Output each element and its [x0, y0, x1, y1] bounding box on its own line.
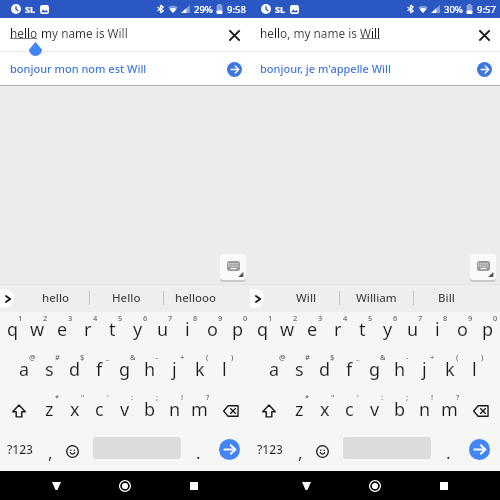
- button[interactable]: ": [62, 391, 87, 431]
- button[interactable]: Home: [112, 471, 138, 500]
- button[interactable]: @: [12, 351, 37, 391]
- staticText: q: [257, 317, 269, 342]
- button[interactable]: Backspace: [462, 391, 500, 431]
- button[interactable]: 5: [100, 312, 125, 351]
- button[interactable]: 8: [425, 312, 450, 351]
- button[interactable]: hellooo: [164, 284, 228, 312]
- button[interactable]: 7: [150, 312, 175, 351]
- button[interactable]: Clear text: [223, 24, 245, 46]
- button[interactable]: !: [412, 391, 437, 431]
- button[interactable]: Back: [0, 471, 112, 500]
- button[interactable]: 1: [0, 312, 25, 351]
- button[interactable]: 4: [75, 312, 100, 351]
- button[interactable]: 0: [225, 312, 250, 351]
- button[interactable]: Enter: [208, 431, 250, 471]
- button[interactable]: 5: [350, 312, 375, 351]
- button[interactable]: !: [162, 391, 187, 431]
- staticText: SL: [25, 3, 35, 15]
- staticText: Hello: [112, 290, 141, 306]
- button[interactable]: 6: [375, 312, 400, 351]
- button[interactable]: 2: [25, 312, 50, 351]
- button[interactable]: Home: [362, 471, 388, 500]
- button[interactable]: hello: [23, 284, 89, 312]
- button[interactable]: 4: [325, 312, 350, 351]
- button[interactable]: William: [340, 284, 413, 312]
- button[interactable]: Enter: [458, 431, 500, 471]
- button[interactable]: Recents: [138, 471, 250, 500]
- staticText: bonjour, je m'appelle Will: [260, 61, 392, 76]
- button[interactable]: Will: [273, 284, 339, 312]
- button[interactable]: 6: [125, 312, 150, 351]
- button[interactable]: $: [62, 351, 87, 391]
- button[interactable]: Emoji: [60, 431, 85, 471]
- button[interactable]: Backspace: [212, 391, 250, 431]
- button[interactable]: _: [87, 351, 112, 391]
- button[interactable]: (: [187, 351, 212, 391]
- button[interactable]: +: [162, 351, 187, 391]
- button[interactable]: ): [212, 351, 237, 391]
- button[interactable]: Shift: [250, 391, 287, 431]
- button[interactable]: Clear text: [473, 24, 495, 46]
- button[interactable]: #: [37, 351, 62, 391]
- button[interactable]: ?: [437, 391, 462, 431]
- button[interactable]: Shift: [0, 391, 37, 431]
- button[interactable]: ,: [290, 431, 310, 471]
- staticText: p: [232, 317, 244, 342]
- button[interactable]: ': [337, 391, 362, 431]
- button[interactable]: $: [312, 351, 337, 391]
- button[interactable]: ,: [40, 431, 60, 471]
- button[interactable]: ): [462, 351, 487, 391]
- button[interactable]: Insert translation: [223, 58, 245, 80]
- button[interactable]: ": [312, 391, 337, 431]
- staticText: 4: [93, 313, 98, 323]
- button[interactable]: -: [387, 351, 412, 391]
- staticText: :: [131, 392, 134, 402]
- button[interactable]: Bill: [414, 284, 478, 312]
- button[interactable]: :: [362, 391, 387, 431]
- button[interactable]: ?: [187, 391, 212, 431]
- button[interactable]: 1: [250, 312, 275, 351]
- button[interactable]: 9: [200, 312, 225, 351]
- button[interactable]: .: [439, 431, 458, 471]
- staticText: a: [19, 357, 30, 382]
- button[interactable]: Resize keyboard: [220, 254, 246, 280]
- staticText: +: [180, 352, 185, 362]
- staticText: 30%: [444, 3, 463, 16]
- button[interactable]: (: [437, 351, 462, 391]
- button[interactable]: *: [287, 391, 312, 431]
- button[interactable]: ?123: [250, 431, 290, 471]
- button[interactable]: 3: [50, 312, 75, 351]
- button[interactable]: More suggestions: [0, 289, 14, 308]
- button[interactable]: *: [37, 391, 62, 431]
- button[interactable]: _: [337, 351, 362, 391]
- button[interactable]: ;: [137, 391, 162, 431]
- button[interactable]: #: [287, 351, 312, 391]
- staticText: h: [144, 357, 156, 382]
- button[interactable]: @: [262, 351, 287, 391]
- button[interactable]: Emoji: [310, 431, 335, 471]
- button[interactable]: 0: [475, 312, 500, 351]
- button[interactable]: 7: [400, 312, 425, 351]
- staticText: _: [106, 352, 110, 362]
- button[interactable]: :: [112, 391, 137, 431]
- button[interactable]: More suggestions: [250, 289, 264, 308]
- button[interactable]: ;: [387, 391, 412, 431]
- button[interactable]: Recents: [388, 471, 500, 500]
- button[interactable]: Hello: [90, 284, 163, 312]
- button[interactable]: 3: [300, 312, 325, 351]
- button[interactable]: -: [137, 351, 162, 391]
- button[interactable]: +: [412, 351, 437, 391]
- button[interactable]: .: [189, 431, 208, 471]
- button[interactable]: Insert translation: [473, 58, 495, 80]
- button[interactable]: &: [112, 351, 137, 391]
- button[interactable]: 9: [450, 312, 475, 351]
- button[interactable]: 8: [175, 312, 200, 351]
- button[interactable]: &: [362, 351, 387, 391]
- button[interactable]: ': [87, 391, 112, 431]
- button[interactable]: ?123: [0, 431, 40, 471]
- button[interactable]: Resize keyboard: [470, 254, 496, 280]
- button[interactable]: 2: [275, 312, 300, 351]
- button[interactable]: Back: [250, 471, 362, 500]
